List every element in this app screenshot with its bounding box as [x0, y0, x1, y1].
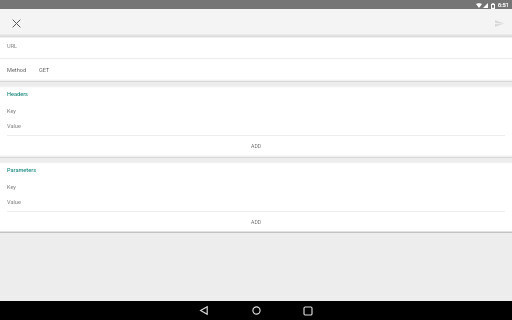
staticText: Value	[7, 123, 21, 130]
staticText: Method	[7, 67, 27, 74]
staticText: Parameters	[7, 167, 37, 174]
button[interactable]: ADD	[0, 212, 512, 231]
staticText: Key	[7, 184, 17, 191]
button[interactable]: Key	[0, 180, 512, 194]
staticText: Key	[7, 108, 17, 115]
button[interactable]: Close	[7, 13, 25, 31]
button[interactable]: Send	[490, 13, 508, 31]
button[interactable]: Home	[241, 301, 271, 320]
button[interactable]: URL	[0, 38, 512, 58]
staticText: GET	[39, 67, 50, 74]
staticText: 6:51	[498, 2, 509, 9]
button[interactable]: Value	[0, 119, 512, 133]
button[interactable]: Value	[0, 195, 512, 209]
staticText: ADD	[251, 143, 262, 149]
button[interactable]: ADD	[0, 136, 512, 155]
staticText: Headers	[7, 91, 28, 98]
button[interactable]: Back	[189, 301, 219, 320]
button[interactable]: Key	[0, 104, 512, 118]
button[interactable]: Method	[0, 59, 512, 79]
staticText: ADD	[251, 219, 262, 225]
staticText: Value	[7, 199, 21, 206]
button[interactable]: Recents	[293, 301, 323, 320]
staticText: URL	[7, 43, 18, 50]
